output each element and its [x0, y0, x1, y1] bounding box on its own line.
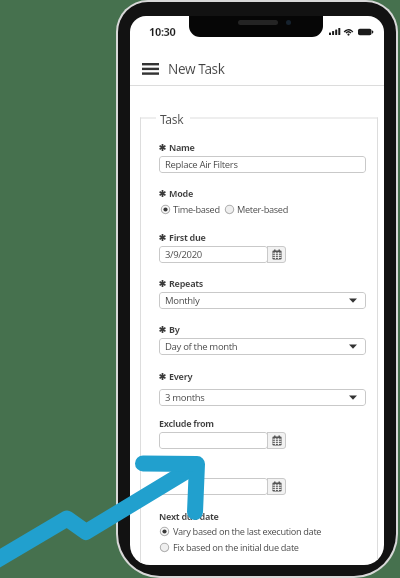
- button[interactable]: [159, 432, 268, 449]
- button[interactable]: Replace Air Filters: [159, 156, 366, 173]
- staticText: New Task: [168, 60, 225, 78]
- staticText: Every: [169, 370, 193, 382]
- button[interactable]: 3 months: [159, 389, 366, 406]
- button[interactable]: [160, 543, 169, 552]
- staticText: Next due date: [159, 510, 219, 522]
- button[interactable]: [142, 62, 160, 76]
- staticText: Fix based on the initial due date: [173, 541, 299, 554]
- button[interactable]: 3/9/2020: [159, 246, 268, 263]
- staticText: 10:30: [149, 24, 176, 39]
- staticText: 3 months: [165, 391, 205, 404]
- staticText: Replace Air Filters: [165, 158, 238, 171]
- staticText: 3/9/2020: [165, 248, 202, 261]
- staticText: Exclude from: [159, 417, 214, 429]
- staticText: Task: [160, 111, 184, 127]
- button[interactable]: Day of the month: [159, 338, 366, 355]
- staticText: Vary based on the last execution date: [173, 525, 322, 538]
- staticText: Meter-based: [237, 203, 288, 216]
- button[interactable]: [267, 432, 286, 449]
- button[interactable]: [159, 478, 268, 495]
- staticText: Time-based: [173, 203, 220, 216]
- button[interactable]: [267, 478, 286, 495]
- button[interactable]: [267, 246, 286, 263]
- staticText: Monthly: [165, 294, 200, 307]
- button[interactable]: [161, 205, 170, 214]
- staticText: Name: [169, 141, 195, 153]
- staticText: Day of the month: [165, 340, 238, 353]
- staticText: Mode: [169, 187, 193, 199]
- staticText: First due: [169, 231, 206, 243]
- button[interactable]: Monthly: [159, 292, 366, 309]
- button[interactable]: [160, 527, 169, 536]
- staticText: Exclude to: [159, 461, 203, 473]
- staticText: Repeats: [169, 277, 204, 289]
- staticText: By: [169, 323, 180, 335]
- button[interactable]: [225, 205, 234, 214]
